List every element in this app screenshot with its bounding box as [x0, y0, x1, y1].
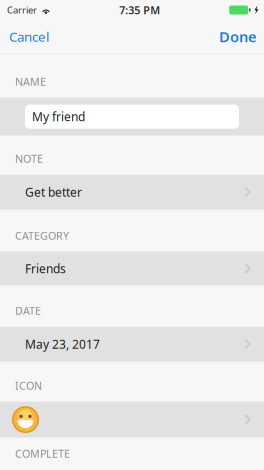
staticText: May 23, 2017: [25, 336, 100, 352]
button[interactable]: [0, 402, 264, 438]
staticText: COMPLETE: [15, 446, 70, 461]
button[interactable]: Get better: [0, 175, 264, 210]
staticText: Done: [219, 27, 257, 46]
staticText: Get better: [25, 184, 82, 200]
button[interactable]: May 23, 2017: [0, 327, 264, 362]
staticText: 7:35 PM: [119, 3, 160, 17]
staticText: NAME: [15, 74, 46, 89]
staticText: My friend: [32, 109, 85, 124]
staticText: Carrier: [7, 4, 37, 16]
button[interactable]: Cancel: [0, 20, 58, 53]
staticText: ICON: [15, 378, 42, 393]
button[interactable]: Done: [212, 20, 264, 53]
staticText: NOTE: [15, 151, 43, 166]
staticText: DATE: [15, 303, 41, 318]
staticText: CATEGORY: [15, 228, 69, 243]
staticText: Cancel: [9, 28, 49, 45]
staticText: Friends: [25, 261, 66, 276]
button[interactable]: Friends: [0, 252, 264, 286]
